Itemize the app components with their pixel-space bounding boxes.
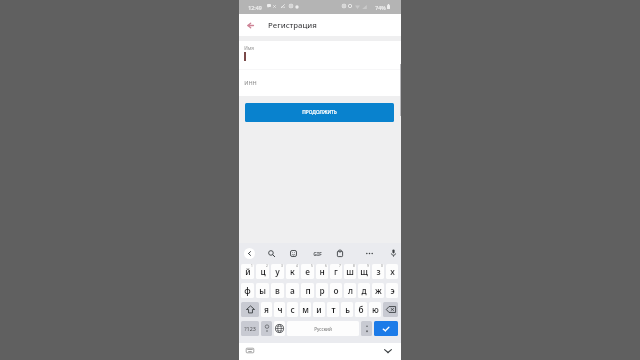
staticText: я	[264, 304, 269, 315]
button[interactable]: Enter	[374, 321, 398, 336]
button[interactable]: GIF	[310, 246, 324, 260]
button[interactable]: т	[327, 302, 339, 317]
button[interactable]: Search	[264, 246, 278, 260]
staticText: з	[376, 266, 381, 277]
button[interactable]: х	[386, 264, 398, 279]
staticText: х	[390, 266, 395, 277]
staticText: и	[316, 304, 322, 315]
staticText: Регистрация	[268, 20, 317, 31]
staticText: 8	[353, 264, 355, 268]
button[interactable]: ю	[369, 302, 381, 317]
staticText: 6	[325, 264, 327, 268]
staticText: ц	[260, 266, 266, 277]
button[interactable]: Change language	[274, 321, 285, 336]
button[interactable]: ч	[274, 302, 285, 317]
button[interactable]: е	[301, 264, 314, 279]
button[interactable]: а	[286, 283, 299, 298]
button[interactable]: ш	[344, 264, 356, 279]
staticText: т	[331, 304, 336, 315]
staticText: й	[245, 266, 251, 277]
button[interactable]: м	[300, 302, 311, 317]
staticText: 7	[339, 264, 341, 268]
button[interactable]: г	[330, 264, 342, 279]
staticText: ь	[345, 304, 350, 315]
staticText: е	[305, 266, 310, 277]
staticText: а	[290, 285, 295, 296]
staticText: 3	[281, 264, 283, 268]
staticText: д	[361, 285, 367, 296]
button[interactable]: я	[261, 302, 272, 317]
button[interactable]: р	[316, 283, 328, 298]
button[interactable]: Backspace	[383, 302, 398, 317]
staticText: 1	[251, 264, 253, 268]
button[interactable]: к	[286, 264, 299, 279]
button[interactable]: Clipboard	[333, 246, 347, 260]
button[interactable]: ь	[341, 302, 353, 317]
staticText: у	[275, 266, 280, 277]
button[interactable]: з	[372, 264, 384, 279]
staticText: 2	[266, 264, 268, 268]
button[interactable]: л	[344, 283, 356, 298]
button[interactable]: ж	[372, 283, 384, 298]
button[interactable]: Voice input	[386, 246, 400, 260]
staticText: н	[319, 266, 325, 277]
button[interactable]: п	[301, 283, 314, 298]
button[interactable]: Back	[239, 14, 262, 36]
staticText: р	[319, 285, 325, 296]
button[interactable]: Shift	[241, 302, 259, 317]
staticText: с	[290, 304, 295, 315]
button[interactable]: и	[313, 302, 325, 317]
staticText: 12:49	[248, 4, 262, 11]
staticText: Имя	[244, 45, 254, 51]
button[interactable]: Stickers	[286, 246, 300, 260]
button[interactable]: ПРОДОЛЖИТЬ	[245, 103, 394, 122]
button[interactable]: ?123	[241, 321, 259, 336]
staticText: ИНН	[244, 79, 257, 87]
staticText: в	[275, 285, 280, 296]
button[interactable]: Русский	[287, 321, 359, 336]
staticText: ПРОДОЛЖИТЬ	[302, 109, 337, 116]
button[interactable]: Имя	[239, 41, 401, 69]
staticText: ш	[346, 266, 354, 277]
button[interactable]: щ	[358, 264, 370, 279]
staticText: м	[302, 304, 309, 315]
button[interactable]: Switch input method	[244, 345, 255, 356]
staticText: ?123	[244, 325, 256, 332]
button[interactable]: д	[358, 283, 370, 298]
button[interactable]: ф	[241, 283, 254, 298]
staticText: г	[334, 266, 338, 277]
staticText: л	[348, 285, 353, 296]
staticText: э	[390, 285, 395, 296]
button[interactable]: о	[330, 283, 342, 298]
staticText: б	[358, 304, 364, 315]
staticText: 4	[296, 264, 298, 268]
button[interactable]: с	[287, 302, 298, 317]
staticText: ю	[372, 304, 379, 315]
staticText: п	[305, 285, 311, 296]
button[interactable]: й	[241, 264, 254, 279]
button[interactable]: ИНН	[239, 70, 401, 96]
button[interactable]: Collapse keyboard	[381, 344, 394, 357]
button[interactable]: э	[386, 283, 398, 298]
button[interactable]: Back	[244, 248, 255, 259]
button[interactable]: в	[271, 283, 284, 298]
staticText: ы	[259, 285, 266, 296]
staticText: 74%	[375, 4, 386, 11]
button[interactable]: н	[316, 264, 328, 279]
button[interactable]: Emoji and comma	[261, 321, 272, 336]
staticText: щ	[360, 266, 368, 277]
button[interactable]: у	[271, 264, 284, 279]
staticText: к	[290, 266, 295, 277]
staticText: 5	[311, 264, 313, 268]
staticText: 9	[367, 264, 369, 268]
button[interactable]: ц	[256, 264, 269, 279]
button[interactable]: Period	[361, 321, 372, 336]
button[interactable]: ы	[256, 283, 269, 298]
staticText: Русский	[314, 326, 332, 332]
staticText: 0	[381, 264, 383, 268]
button[interactable]: More options	[362, 246, 376, 260]
staticText: ф	[244, 285, 251, 296]
staticText: о	[333, 285, 339, 296]
staticText: GIF	[313, 250, 322, 257]
button[interactable]: б	[355, 302, 367, 317]
